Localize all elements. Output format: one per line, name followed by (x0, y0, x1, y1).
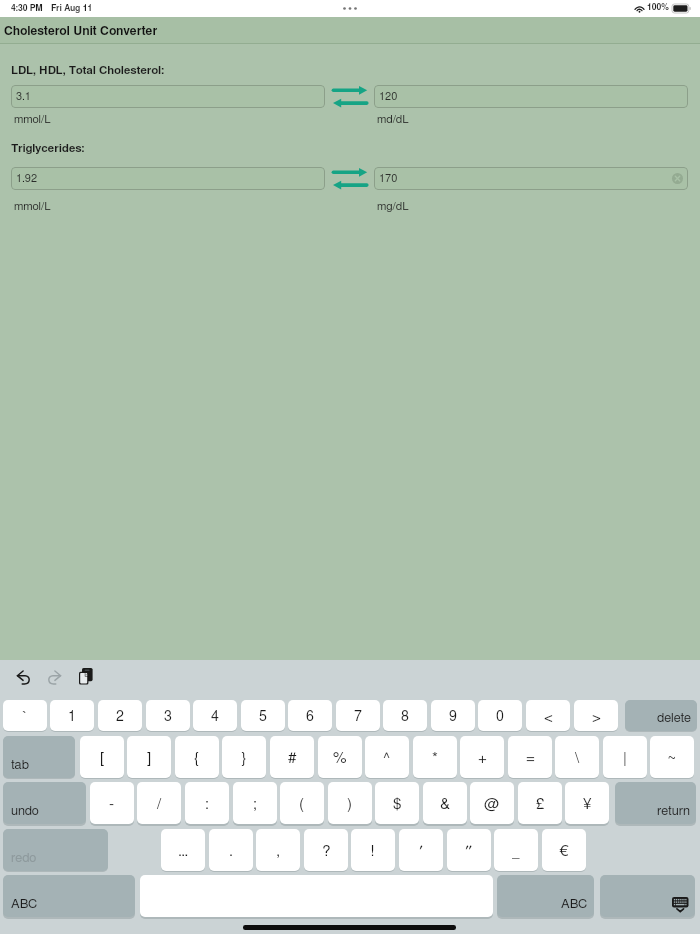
staticText: 8 (401, 710, 409, 724)
button[interactable]: . (209, 829, 253, 871)
button[interactable]: ( (280, 782, 324, 824)
button[interactable]: Paste (79, 668, 97, 686)
button[interactable]: 6 (288, 700, 332, 731)
button[interactable]: ABC (3, 875, 135, 917)
staticText: 4 (211, 710, 219, 724)
button[interactable]: [ (80, 736, 124, 778)
button[interactable]: ! (351, 829, 395, 871)
staticText: ^ (383, 751, 391, 766)
staticText: \ (575, 751, 580, 766)
staticText: = (526, 751, 535, 766)
button[interactable]: 5 (241, 700, 285, 731)
staticText: tab (11, 759, 29, 772)
staticText: ′ (419, 844, 424, 859)
button[interactable]: ^ (365, 736, 409, 778)
button[interactable]: { (175, 736, 219, 778)
staticText: ~ (668, 751, 676, 766)
button[interactable]: ″ (447, 829, 491, 871)
staticText: _ (512, 844, 520, 859)
button[interactable]: % (318, 736, 362, 778)
staticText: 6 (306, 710, 314, 724)
button[interactable]: ABC (497, 875, 594, 917)
button[interactable]: ′ (399, 829, 443, 871)
button[interactable]: Redo (48, 671, 64, 687)
button[interactable]: > (574, 700, 618, 731)
button[interactable]: delete (625, 700, 697, 731)
button[interactable]: - (90, 782, 134, 824)
button[interactable]: ? (304, 829, 348, 871)
button[interactable]: # (270, 736, 314, 778)
staticText: & (440, 797, 451, 812)
button[interactable]: € (542, 829, 586, 871)
button[interactable]: ~ (650, 736, 694, 778)
button[interactable]: @ (470, 782, 514, 824)
button[interactable]: ] (127, 736, 171, 778)
button[interactable]: ¥ (565, 782, 609, 824)
button[interactable]: 9 (431, 700, 475, 731)
button[interactable]: _ (494, 829, 538, 871)
staticText: redo (11, 852, 37, 865)
button[interactable]: £ (518, 782, 562, 824)
staticText: 7 (354, 710, 362, 724)
staticText: delete (657, 712, 691, 725)
staticText: md/dL (377, 114, 409, 125)
staticText: 1 (68, 710, 76, 724)
button[interactable]: & (423, 782, 467, 824)
button[interactable]: 170 (374, 167, 688, 190)
button[interactable]: 3 (146, 700, 190, 731)
button[interactable]: , (256, 829, 300, 871)
button[interactable]: … (161, 829, 205, 871)
button[interactable]: ) (328, 782, 372, 824)
button[interactable]: 0 (478, 700, 522, 731)
button[interactable]: redo (3, 829, 108, 871)
button[interactable]: Cholesterol Unit Converter (0, 17, 700, 43)
button[interactable]: 1.92 (11, 167, 325, 190)
staticText: 3.1 (16, 91, 31, 102)
button[interactable]: 120 (374, 85, 688, 108)
staticText: . (229, 844, 233, 859)
staticText: 3 (164, 710, 172, 724)
staticText: { (194, 751, 200, 766)
staticText: £ (536, 797, 545, 812)
button[interactable]: : (185, 782, 229, 824)
button[interactable]: 4 (193, 700, 237, 731)
button[interactable]: 2 (98, 700, 142, 731)
staticText: mg/dL (377, 201, 409, 212)
staticText: return (657, 805, 690, 818)
button[interactable]: Hide keyboard (600, 875, 695, 917)
staticText: ` (22, 710, 28, 725)
button[interactable]: return (615, 782, 696, 824)
staticText: Fri Aug 11 (51, 4, 93, 13)
button[interactable]: / (137, 782, 181, 824)
button[interactable]: + (460, 736, 504, 778)
button[interactable]: Undo (17, 671, 33, 687)
staticText: … (178, 844, 189, 859)
staticText: - (109, 797, 115, 812)
button[interactable]: ` (3, 700, 47, 731)
button[interactable]: 3.1 (11, 85, 325, 108)
button[interactable]: } (222, 736, 266, 778)
staticText: ! (370, 844, 376, 859)
staticText: 0 (496, 710, 504, 724)
staticText: ″ (465, 844, 473, 859)
staticText: 5 (259, 710, 267, 724)
staticText: < (544, 710, 553, 725)
button[interactable]: Swap units (333, 86, 368, 108)
button[interactable]: tab (3, 736, 75, 778)
button[interactable]: 7 (336, 700, 380, 731)
button[interactable]: = (508, 736, 552, 778)
button[interactable]: 1 (50, 700, 94, 731)
button[interactable]: ; (233, 782, 277, 824)
button[interactable]: * (413, 736, 457, 778)
staticText: } (241, 751, 247, 766)
button[interactable]: < (526, 700, 570, 731)
staticText: ¥ (583, 797, 592, 812)
button[interactable]: Swap units (333, 168, 368, 190)
button[interactable]: 8 (383, 700, 427, 731)
button[interactable]: $ (375, 782, 419, 824)
button[interactable]: \ (555, 736, 599, 778)
button[interactable]: Clear text (672, 173, 683, 184)
button[interactable]: undo (3, 782, 86, 824)
button[interactable]: | (603, 736, 647, 778)
